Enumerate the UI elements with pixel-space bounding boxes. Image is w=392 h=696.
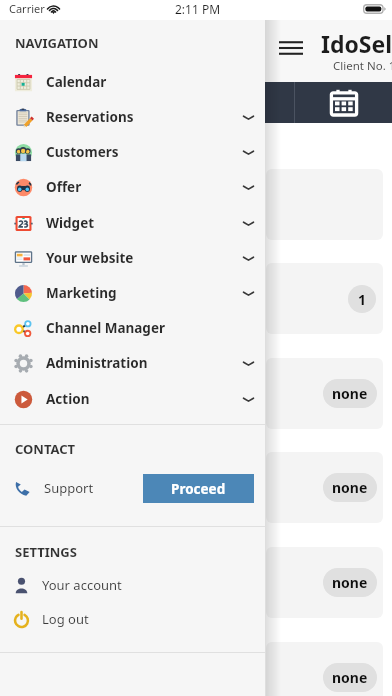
button[interactable] (266, 169, 383, 240)
button[interactable]: Reservations (0, 100, 265, 134)
button[interactable]: Calendar (0, 65, 265, 99)
button[interactable]: Administration (0, 346, 265, 380)
staticText: Log out (42, 610, 89, 628)
button[interactable]: Your website (0, 241, 265, 275)
button[interactable]: Calendar tab (318, 82, 370, 123)
button[interactable]: Customers (0, 135, 265, 169)
button[interactable]: Widget (0, 206, 265, 240)
staticText: Carrier (9, 1, 45, 16)
staticText: NAVIGATION (15, 34, 99, 52)
button[interactable]: Proceed (143, 474, 254, 503)
button[interactable]: Log out (0, 602, 265, 636)
staticText: Calendar (46, 73, 107, 91)
staticText: Support (44, 479, 94, 497)
button[interactable]: 1 (266, 263, 383, 334)
button[interactable]: Channel Manager (0, 311, 265, 345)
staticText: 1 (358, 290, 367, 309)
staticText: Customers (46, 143, 119, 161)
staticText: Your account (42, 576, 122, 594)
staticText: none (332, 478, 368, 497)
button[interactable]: Support (0, 471, 265, 505)
staticText: IdoSell (321, 28, 392, 59)
staticText: Proceed (171, 480, 226, 498)
staticText: Widget (46, 214, 95, 232)
button[interactable]: none (266, 452, 383, 523)
staticText: Client No. 1 (333, 58, 392, 74)
button[interactable]: none (266, 547, 383, 618)
staticText: 2:11 PM (175, 1, 221, 17)
staticText: Action (46, 390, 90, 408)
other: Battery (363, 4, 386, 14)
staticText: none (332, 384, 368, 403)
staticText: Channel Manager (46, 319, 165, 337)
staticText: Your website (46, 249, 134, 267)
button[interactable]: none (266, 642, 383, 696)
staticText: SETTINGS (15, 543, 77, 561)
button[interactable]: Offer (0, 170, 265, 204)
staticText: none (332, 573, 368, 592)
staticText: Marketing (46, 284, 117, 302)
button[interactable]: Marketing (0, 276, 265, 310)
button[interactable]: Your account (0, 568, 265, 602)
button[interactable]: none (266, 358, 383, 429)
staticText: Reservations (46, 108, 134, 126)
button[interactable]: Action (0, 382, 265, 416)
button[interactable]: Menu (269, 26, 313, 70)
staticText: Administration (46, 354, 148, 372)
staticText: CONTACT (15, 440, 76, 458)
staticText: none (332, 668, 368, 687)
staticText: Offer (46, 178, 82, 196)
